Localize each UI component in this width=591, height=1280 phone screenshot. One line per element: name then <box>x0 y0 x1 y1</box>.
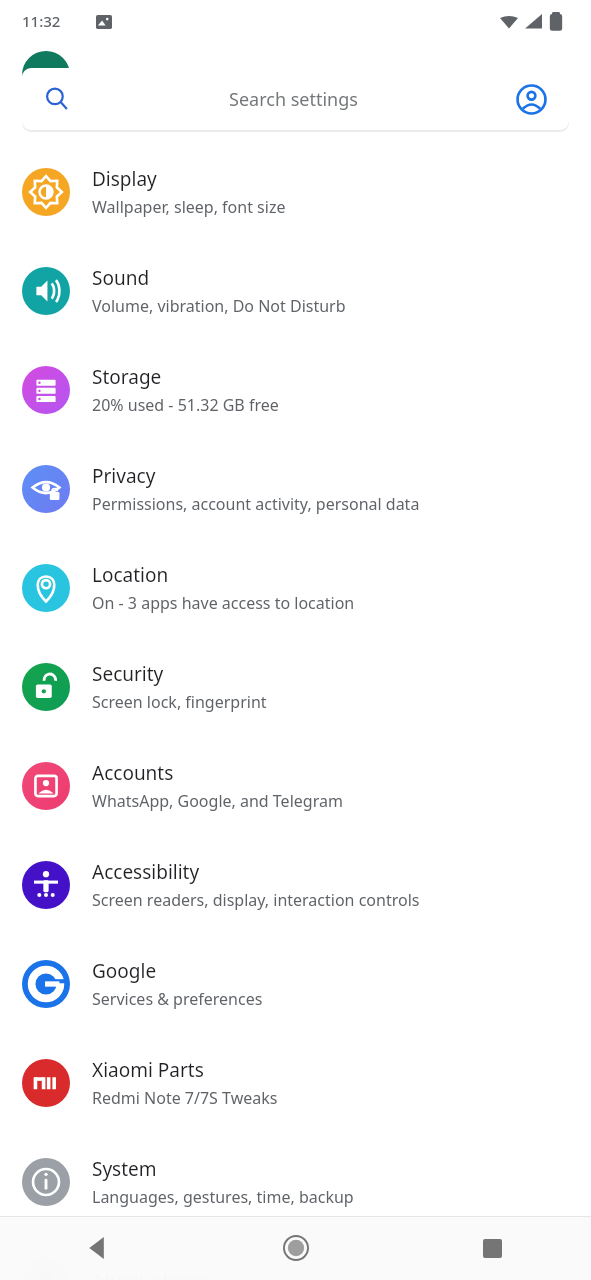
staticText: Accessibility <box>92 859 200 885</box>
other: Search <box>44 86 70 112</box>
button[interactable]: Google <box>0 934 591 1033</box>
button[interactable]: Storage <box>0 340 591 439</box>
staticText: Sound <box>92 265 150 291</box>
button[interactable]: Back <box>0 1216 197 1280</box>
staticText: Services & preferences <box>92 988 263 1010</box>
staticText: Xiaomi Parts <box>92 1057 204 1083</box>
staticText: WhatsApp, Google, and Telegram <box>92 790 343 812</box>
staticText: Search settings <box>229 87 358 112</box>
button[interactable]: Xiaomi Parts <box>0 1033 591 1132</box>
staticText: Permissions, account activity, personal … <box>92 493 420 515</box>
staticText: Volume, vibration, Do Not Disturb <box>92 295 346 317</box>
staticText: Security <box>92 661 164 687</box>
button[interactable]: Security <box>0 637 591 736</box>
button[interactable]: Home <box>197 1216 394 1280</box>
staticText: Languages, gestures, time, backup <box>92 1186 354 1208</box>
button[interactable]: System <box>0 1132 591 1231</box>
staticText: Location <box>92 562 169 588</box>
staticText: 11:32 <box>22 11 61 31</box>
staticText: System <box>92 1156 157 1182</box>
button[interactable]: Sound <box>0 241 591 340</box>
staticText: Screen lock, fingerprint <box>92 691 267 713</box>
staticText: Storage <box>92 364 162 390</box>
button[interactable]: Privacy <box>0 439 591 538</box>
staticText: Accounts <box>92 760 174 786</box>
staticText: Screen readers, display, interaction con… <box>92 889 420 911</box>
button[interactable]: Search <box>22 68 569 130</box>
other: Account <box>516 84 547 115</box>
staticText: Redmi Note 7/7S Tweaks <box>92 1087 278 1109</box>
staticText: On - 3 apps have access to location <box>92 592 355 614</box>
button[interactable]: Recent apps <box>394 1216 591 1280</box>
button[interactable]: Accessibility <box>0 835 591 934</box>
staticText: Privacy <box>92 463 156 489</box>
button[interactable]: Display <box>0 142 591 241</box>
button[interactable]: Accounts <box>0 736 591 835</box>
button[interactable]: Location <box>0 538 591 637</box>
staticText: 20% used - 51.32 GB free <box>92 394 279 416</box>
staticText: Display <box>92 166 157 192</box>
staticText: Wallpaper, sleep, font size <box>92 196 286 218</box>
staticText: Google <box>92 958 157 984</box>
button[interactable]: About phone <box>0 1231 591 1280</box>
